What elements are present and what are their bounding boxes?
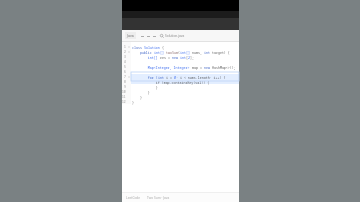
button[interactable]: Run [139,33,145,39]
button[interactable]: Undo [145,33,151,39]
staticText: LeetCode [126,196,141,200]
staticText: Solution [144,45,160,49]
staticText: int [180,55,186,59]
staticText: 1 [124,45,126,49]
staticText: 11 [122,95,126,99]
staticText: i = [166,75,174,79]
staticText: Map<Integer, Integer> [132,65,192,69]
staticText: target) { [212,50,230,54]
staticText: 3 [124,55,126,59]
staticText: 2 [188,55,190,59]
staticText: public [132,50,154,54]
staticText: 9 [124,85,126,89]
staticText: ]; [190,55,194,59]
staticText: Solution.java [165,34,185,38]
staticText: nums, [192,50,204,54]
staticText: Java [127,33,134,38]
staticText: int [204,50,212,54]
button[interactable]: Search [159,33,164,38]
staticText: for ( [132,75,158,79]
staticText: if (map.containsKey(val)) { [132,80,210,84]
staticText: 0 [174,75,176,79]
staticText: twoSum [166,50,178,54]
button[interactable]: LeetCode [126,196,141,200]
staticText: HashMap<>(); [212,65,236,69]
staticText: ( [178,50,180,54]
staticText: 5 [124,65,126,69]
button[interactable]: Redo [151,33,157,39]
staticText: } [132,85,158,89]
staticText: map = [192,65,204,69]
staticText: new [204,65,212,69]
staticText: 8 [124,80,126,84]
staticText: int[] [154,50,166,54]
staticText: Two Sum · Java [147,196,170,200]
staticText: 12 [122,100,126,104]
staticText: int[] [180,50,192,54]
staticText: ; i < nums.length; i++) { [176,75,226,79]
staticText: 10 [122,90,126,94]
staticText: } [132,95,142,99]
button[interactable]: Java [125,32,136,39]
staticText: int [158,75,166,79]
staticText: int[] [132,55,160,59]
staticText: 7 [124,75,126,79]
staticText: { [160,45,164,49]
staticText: new [172,55,180,59]
staticText: 2 [124,50,126,54]
staticText: 4 [124,60,126,64]
staticText: class [132,45,144,49]
staticText: } [132,100,134,104]
staticText: 6 [124,70,126,74]
button[interactable]: Two Sum · Java [147,196,170,200]
staticText: [ [186,55,188,59]
staticText: } [132,90,150,94]
staticText: res = [160,55,172,59]
